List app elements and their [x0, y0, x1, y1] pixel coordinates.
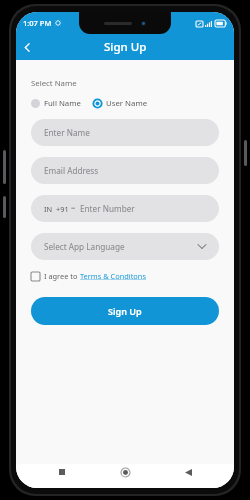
staticText: Select App Language — [44, 241, 125, 252]
staticText: Select Name — [31, 78, 77, 89]
button[interactable]: I agree to — [31, 271, 146, 281]
button[interactable]: Recent apps — [54, 464, 70, 480]
staticText: Sign Up — [104, 39, 147, 55]
button[interactable]: Back — [180, 464, 196, 480]
button[interactable]: Email Address — [31, 157, 219, 184]
staticText: I agree to — [44, 271, 80, 281]
staticText: 1:07 PM — [23, 18, 52, 28]
button[interactable]: Back — [16, 36, 38, 58]
button[interactable]: User Name — [93, 98, 148, 109]
button[interactable]: Full Name — [31, 98, 81, 109]
staticText: Email Address — [44, 165, 99, 176]
staticText: Terms & Conditons — [80, 271, 146, 281]
staticText: Full Name — [44, 98, 81, 109]
button[interactable]: Home — [117, 464, 133, 480]
button[interactable]: Select App Language — [31, 233, 219, 260]
staticText: User Name — [106, 98, 148, 109]
staticText: Enter Number — [80, 203, 135, 214]
staticText: Enter Name — [44, 127, 90, 138]
button[interactable]: Enter Name — [31, 119, 219, 146]
button[interactable]: Sign Up — [31, 297, 219, 325]
staticText: IN — [44, 204, 53, 214]
staticText: Sign Up — [108, 305, 142, 317]
staticText: +91 — [56, 204, 69, 214]
button[interactable]: IN — [31, 195, 219, 222]
